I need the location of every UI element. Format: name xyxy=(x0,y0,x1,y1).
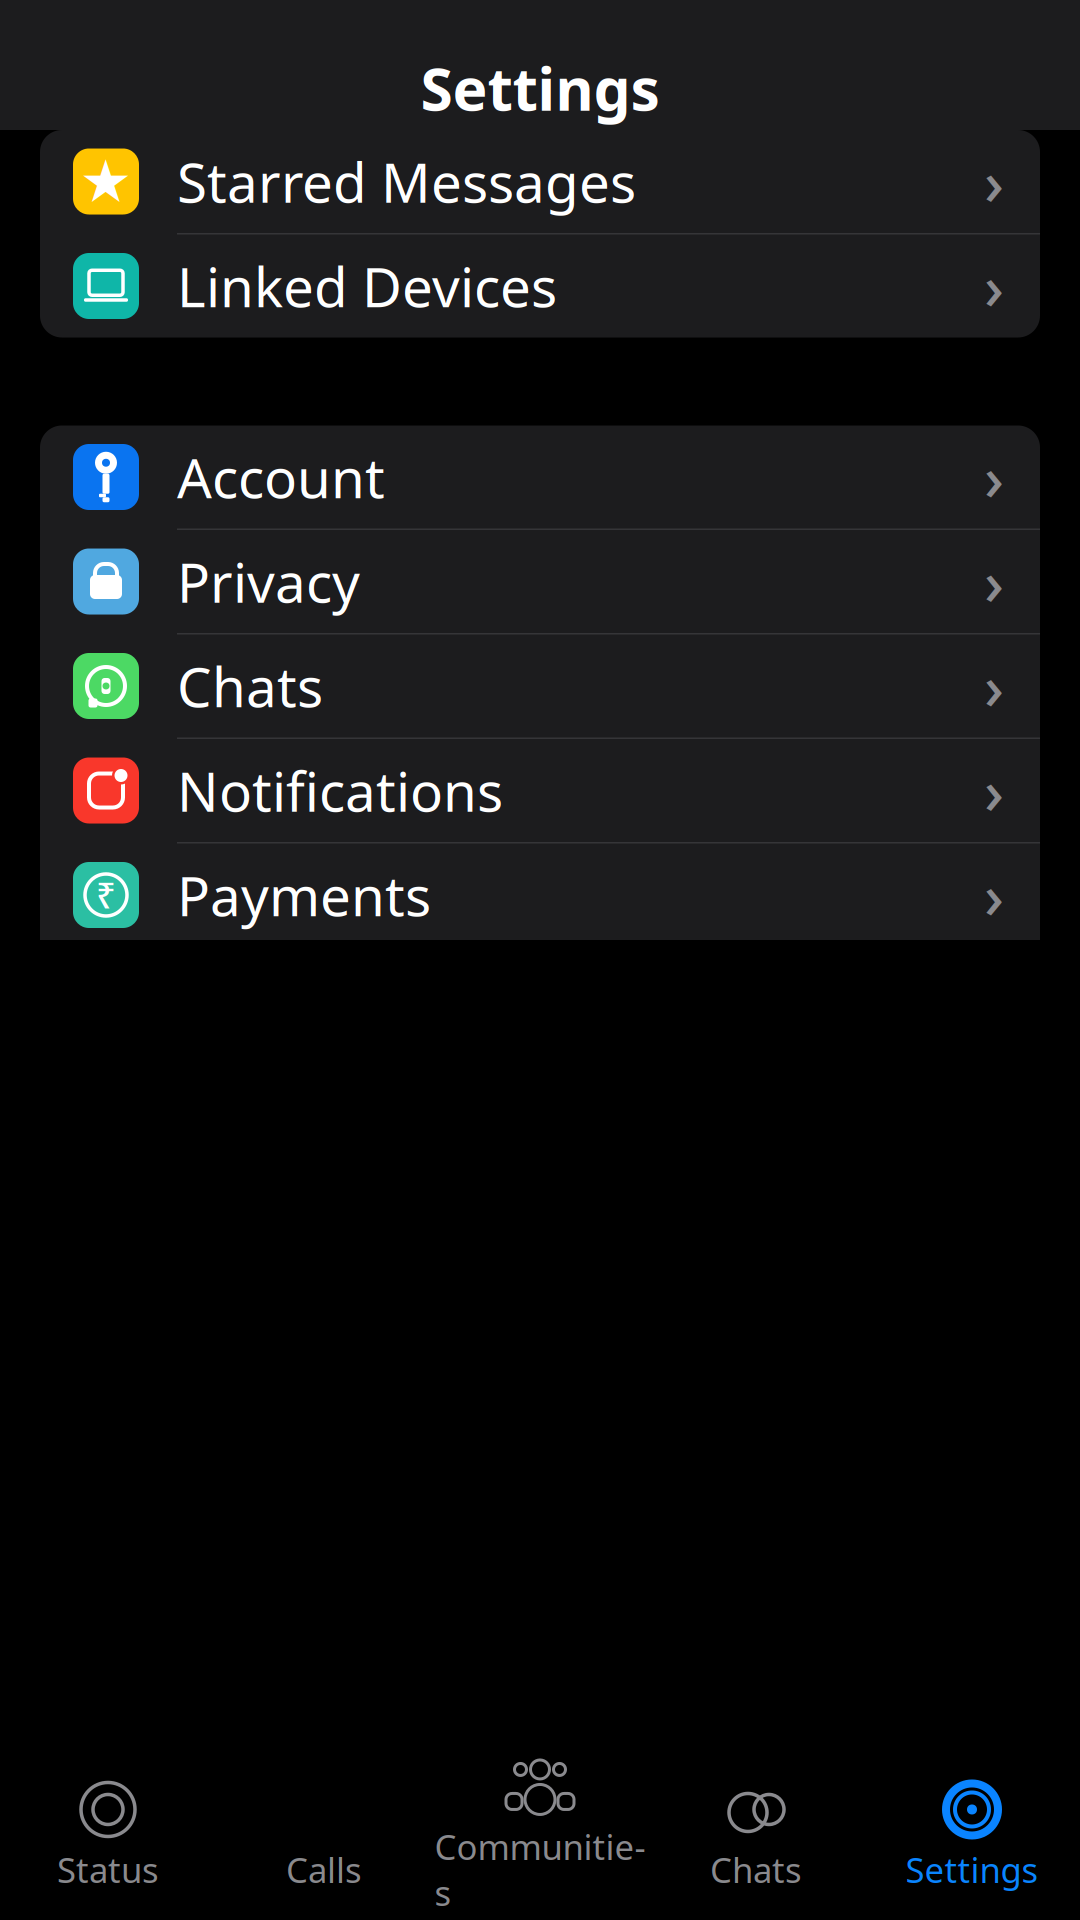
staticText: › xyxy=(984,854,1004,936)
button[interactable]: Account xyxy=(40,425,1040,530)
staticText: › xyxy=(984,436,1004,518)
button[interactable]: 📞 xyxy=(40,634,1040,739)
button[interactable]: Chats xyxy=(648,1767,864,1902)
staticText: Calls xyxy=(286,1846,362,1892)
staticText: Settings xyxy=(905,1846,1038,1892)
staticText: ₹ xyxy=(96,872,116,918)
staticText: Account xyxy=(177,441,385,513)
staticText: Communities xyxy=(434,1823,645,1916)
staticText: Notifications xyxy=(177,754,503,827)
button[interactable]: Status xyxy=(0,1767,216,1902)
staticText: Starred Messages xyxy=(177,145,636,218)
staticText: Chats xyxy=(710,1846,802,1892)
staticText: Settings xyxy=(420,49,659,127)
button[interactable]: ₹ xyxy=(40,843,1040,948)
staticText: › xyxy=(984,245,1004,327)
staticText: Chats xyxy=(177,650,323,722)
staticText: Linked Devices xyxy=(177,250,557,322)
staticText: ★ xyxy=(79,148,132,215)
button[interactable]: Notifications xyxy=(40,739,1040,843)
staticText: › xyxy=(984,750,1004,831)
button[interactable]: Privacy xyxy=(40,530,1040,634)
button[interactable]: Linked Devices xyxy=(40,234,1040,337)
button[interactable]: Communities xyxy=(432,1744,648,1920)
staticText: Privacy xyxy=(177,545,360,618)
staticText: Status xyxy=(57,1846,159,1892)
button[interactable]: ★ xyxy=(40,130,1040,234)
staticText: › xyxy=(984,645,1004,727)
button[interactable]: 📞 xyxy=(216,1767,432,1902)
staticText: Payments xyxy=(177,859,431,931)
staticText: › xyxy=(984,141,1004,222)
staticText: › xyxy=(984,541,1004,622)
button[interactable]: Settings xyxy=(864,1767,1080,1902)
